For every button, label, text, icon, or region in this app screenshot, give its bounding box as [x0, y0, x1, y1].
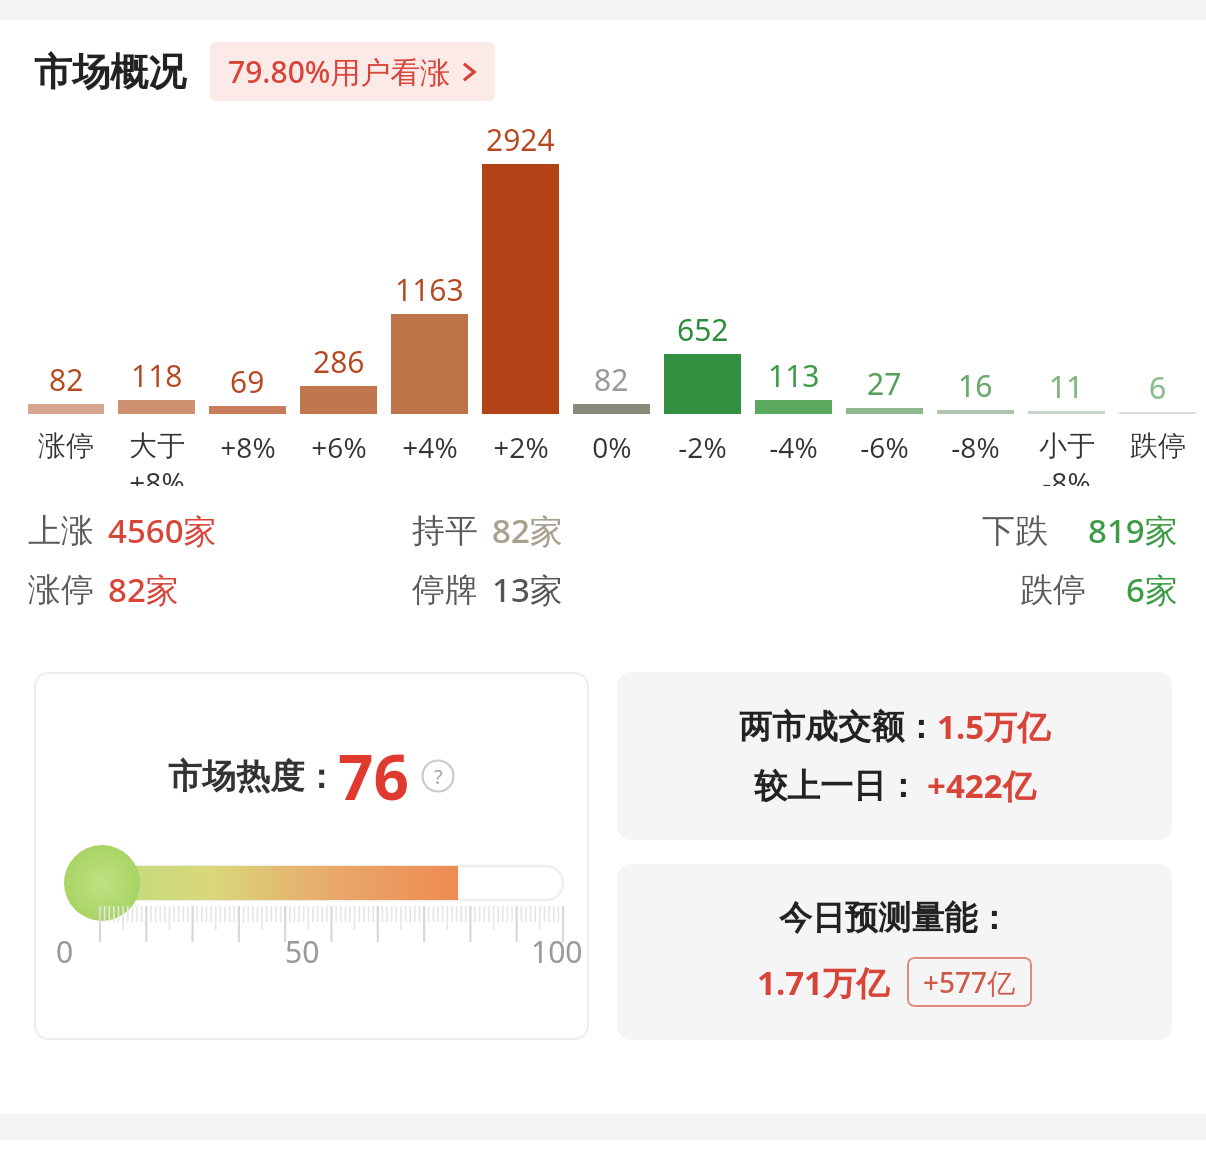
staticText: +8% [129, 463, 185, 486]
staticText: -8% [951, 428, 1000, 466]
staticText: 652 [677, 309, 729, 350]
staticText: 小于 [1039, 428, 1095, 463]
staticText: 0% [592, 428, 632, 466]
staticText: 82 [49, 359, 84, 400]
staticText: 市场热度： [168, 755, 338, 798]
staticText: 2924 [486, 119, 555, 160]
staticText: -2% [678, 428, 727, 466]
staticText: 50 [285, 931, 320, 972]
staticText: 1163 [395, 269, 464, 310]
staticText: 停牌 [412, 569, 478, 611]
staticText: -4% [769, 428, 818, 466]
staticText: ? [434, 763, 443, 790]
staticText: +577亿 [923, 963, 1016, 1001]
staticText: +2% [493, 428, 549, 466]
staticText: +422亿 [927, 763, 1036, 808]
staticText: +8% [220, 428, 276, 466]
staticText: 两市成交额： [739, 706, 937, 748]
staticText: 82家 [108, 567, 179, 612]
button[interactable]: 79.80%用户看涨 [210, 42, 495, 101]
staticText: 涨停 [38, 428, 94, 463]
staticText: -6% [860, 428, 909, 466]
staticText: 82家 [492, 508, 563, 553]
staticText: 涨停 [28, 569, 94, 611]
staticText: 4560家 [108, 508, 217, 553]
staticText: -8% [1042, 463, 1091, 486]
staticText: 1.5万亿 [937, 704, 1051, 749]
staticText: +6% [311, 428, 367, 466]
staticText: 819家 [1088, 508, 1178, 553]
staticText: 较上一日： [754, 765, 919, 807]
button[interactable]: 两市成交额： [617, 672, 1172, 840]
staticText: 6 [1149, 367, 1167, 408]
button[interactable]: 市场热度说明 [421, 759, 455, 793]
staticText: 上涨 [28, 510, 94, 552]
staticText: 11 [1049, 366, 1084, 407]
staticText: 76 [338, 734, 409, 818]
staticText: 1.71万亿 [757, 960, 889, 1005]
button[interactable]: 今日预测量能： [617, 864, 1172, 1040]
staticText: 118 [131, 355, 183, 396]
staticText: 大于 [129, 428, 185, 463]
staticText: 82 [594, 359, 629, 400]
staticText: +4% [402, 428, 458, 466]
staticText: 6家 [1126, 567, 1178, 612]
staticText: 今日预测量能： [779, 897, 1010, 939]
staticText: 79.80%用户看涨 [228, 51, 451, 92]
staticText: 16 [958, 365, 993, 406]
staticText: 100 [531, 931, 583, 972]
staticText: 跌停 [1020, 569, 1086, 611]
staticText: 持平 [412, 510, 478, 552]
staticText: 跌停 [1130, 428, 1186, 463]
staticText: 13家 [492, 567, 563, 612]
staticText: 69 [230, 361, 265, 402]
staticText: 0 [56, 931, 74, 972]
staticText: 286 [313, 341, 365, 382]
staticText: 113 [768, 355, 820, 396]
staticText: 下跌 [982, 510, 1048, 552]
button[interactable]: 市场热度： [34, 672, 589, 1040]
staticText: 市场概况 [34, 48, 186, 96]
staticText: 27 [867, 363, 902, 404]
